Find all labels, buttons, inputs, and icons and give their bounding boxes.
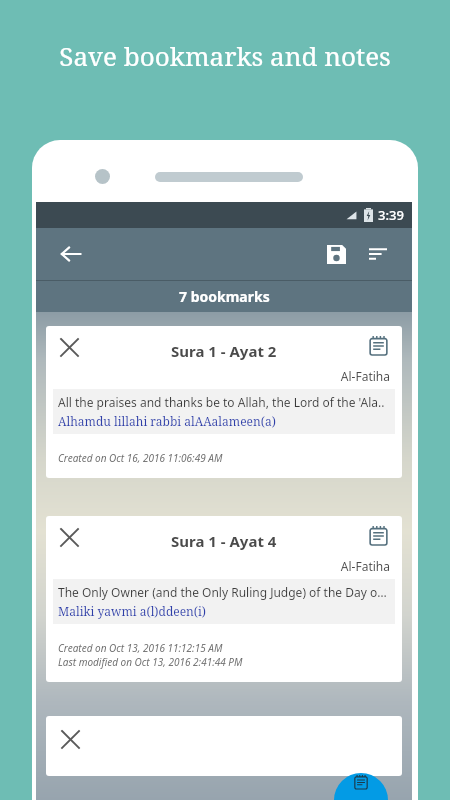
staticText: Sura 1 - Ayat 4 <box>171 531 277 551</box>
staticText: All the praises and thanks be to Allah, … <box>58 394 385 410</box>
button[interactable]: Remove bookmark <box>54 332 84 362</box>
button[interactable]: Save <box>318 236 354 272</box>
staticText: 7 bookmarks <box>179 287 270 306</box>
button[interactable]: 7 bookmarks <box>36 281 412 312</box>
button[interactable]: Remove bookmark <box>46 326 402 478</box>
button[interactable]: Remove bookmark <box>46 516 402 682</box>
staticText: Created on Oct 13, 2016 11:12:15 AM <box>58 641 223 655</box>
button[interactable]: Open note <box>364 331 392 359</box>
staticText: 3:39 <box>378 206 404 224</box>
staticText: Sura 1 - Ayat 2 <box>171 341 277 361</box>
staticText: Al-Fatiha <box>46 558 390 574</box>
staticText: Maliki yawmi a(l)ddeen(i) <box>58 603 206 619</box>
button[interactable]: Back <box>54 237 88 271</box>
staticText: Al-Fatiha <box>46 368 390 384</box>
staticText: Last modified on Oct 13, 2016 2:41:44 PM <box>58 655 243 669</box>
button[interactable]: Remove bookmark <box>46 716 402 776</box>
staticText: Alhamdu lillahi rabbi alAAalameen(a) <box>58 413 276 429</box>
button[interactable]: Open note <box>364 521 392 549</box>
staticText: Created on Oct 16, 2016 11:06:49 AM <box>58 451 223 465</box>
button[interactable]: Remove bookmark <box>54 522 84 552</box>
button[interactable]: Add note <box>334 773 388 800</box>
button[interactable]: Remove bookmark <box>56 725 84 753</box>
button[interactable]: Sort <box>360 236 396 272</box>
staticText: The Only Owner (and the Only Ruling Judg… <box>58 584 390 600</box>
staticText: Save bookmarks and notes <box>59 38 391 73</box>
